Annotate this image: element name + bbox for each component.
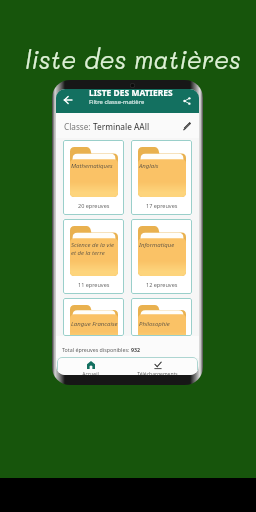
button[interactable]: Anglais [131,140,192,215]
staticText: liste des matières [5,43,256,75]
button[interactable]: Accueil [57,357,124,375]
staticText: Total épreuves disponibles: [62,346,131,353]
button[interactable]: Science de la vie et de la terre [63,219,124,294]
staticText: Classe: [64,121,93,132]
button[interactable]: Share [179,89,195,113]
staticText: 932 [131,346,141,353]
staticText: Filtre classe-matière [89,98,145,106]
staticText: Langue Francaise [71,320,118,328]
button[interactable]: Téléchargements [124,357,191,375]
button[interactable]: Philosophie [131,298,192,336]
staticText: Informatique [139,241,175,249]
staticText: Mathematiques [71,162,113,170]
button[interactable]: Informatique [131,219,192,294]
button[interactable]: Langue Francaise [63,298,124,336]
staticText: Philosophie [139,320,170,328]
staticText: LISTE DES MATIERES [89,89,173,98]
staticText: Téléchargements [137,371,178,375]
staticText: Accueil [82,371,99,375]
button[interactable]: Edit class [179,118,195,134]
button[interactable]: Mathematiques [63,140,124,215]
staticText: 20 epreuves [78,202,110,209]
staticText: Science de la vie et de la terre [71,241,114,257]
staticText: Anglais [139,162,159,170]
staticText: Terminale AAll [93,121,150,132]
staticText: 11 epreuves [78,281,110,288]
staticText: 17 epreuves [146,202,178,209]
button[interactable]: Back [59,89,77,112]
staticText: 12 epreuves [146,281,178,288]
